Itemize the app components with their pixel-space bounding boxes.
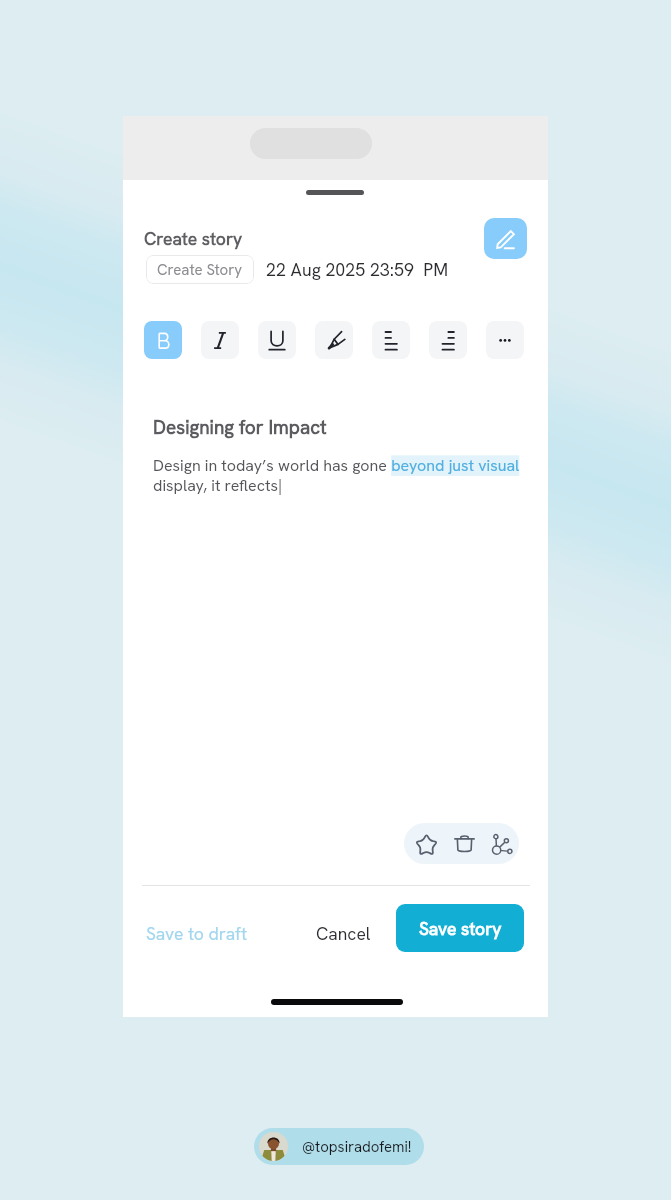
button[interactable]: Create Story bbox=[146, 255, 254, 284]
button[interactable]: Underline bbox=[258, 321, 296, 359]
button[interactable]: Align right bbox=[429, 321, 467, 359]
button[interactable]: Save story bbox=[396, 904, 524, 952]
button[interactable]: Favorite bbox=[407, 825, 445, 863]
button[interactable]: More bbox=[486, 321, 524, 359]
button[interactable]: Cancel bbox=[311, 917, 376, 950]
staticText: Cancel bbox=[316, 922, 371, 945]
button[interactable]: Share bbox=[483, 825, 519, 863]
button[interactable]: @topsiradofemi! bbox=[254, 1128, 424, 1165]
button[interactable]: Align left bbox=[372, 321, 410, 359]
button[interactable]: Edit bbox=[484, 218, 527, 259]
staticText: @topsiradofemi! bbox=[302, 1137, 412, 1157]
button[interactable]: Delete bbox=[445, 825, 483, 863]
staticText: Create Story bbox=[157, 260, 243, 280]
staticText: Create story bbox=[144, 227, 243, 250]
button[interactable]: Highlight bbox=[315, 321, 353, 359]
button[interactable]: Bold bbox=[144, 321, 182, 359]
staticText: Designing for Impact bbox=[153, 415, 327, 440]
staticText: 22 Aug 2025 23:59 PM bbox=[266, 258, 449, 281]
button[interactable]: Save to draft bbox=[141, 917, 253, 950]
button[interactable]: Italic bbox=[201, 321, 239, 359]
staticText: Design in today’s world has gone beyond … bbox=[153, 455, 531, 496]
staticText: Save story bbox=[419, 917, 502, 940]
staticText: Save to draft bbox=[146, 922, 248, 945]
